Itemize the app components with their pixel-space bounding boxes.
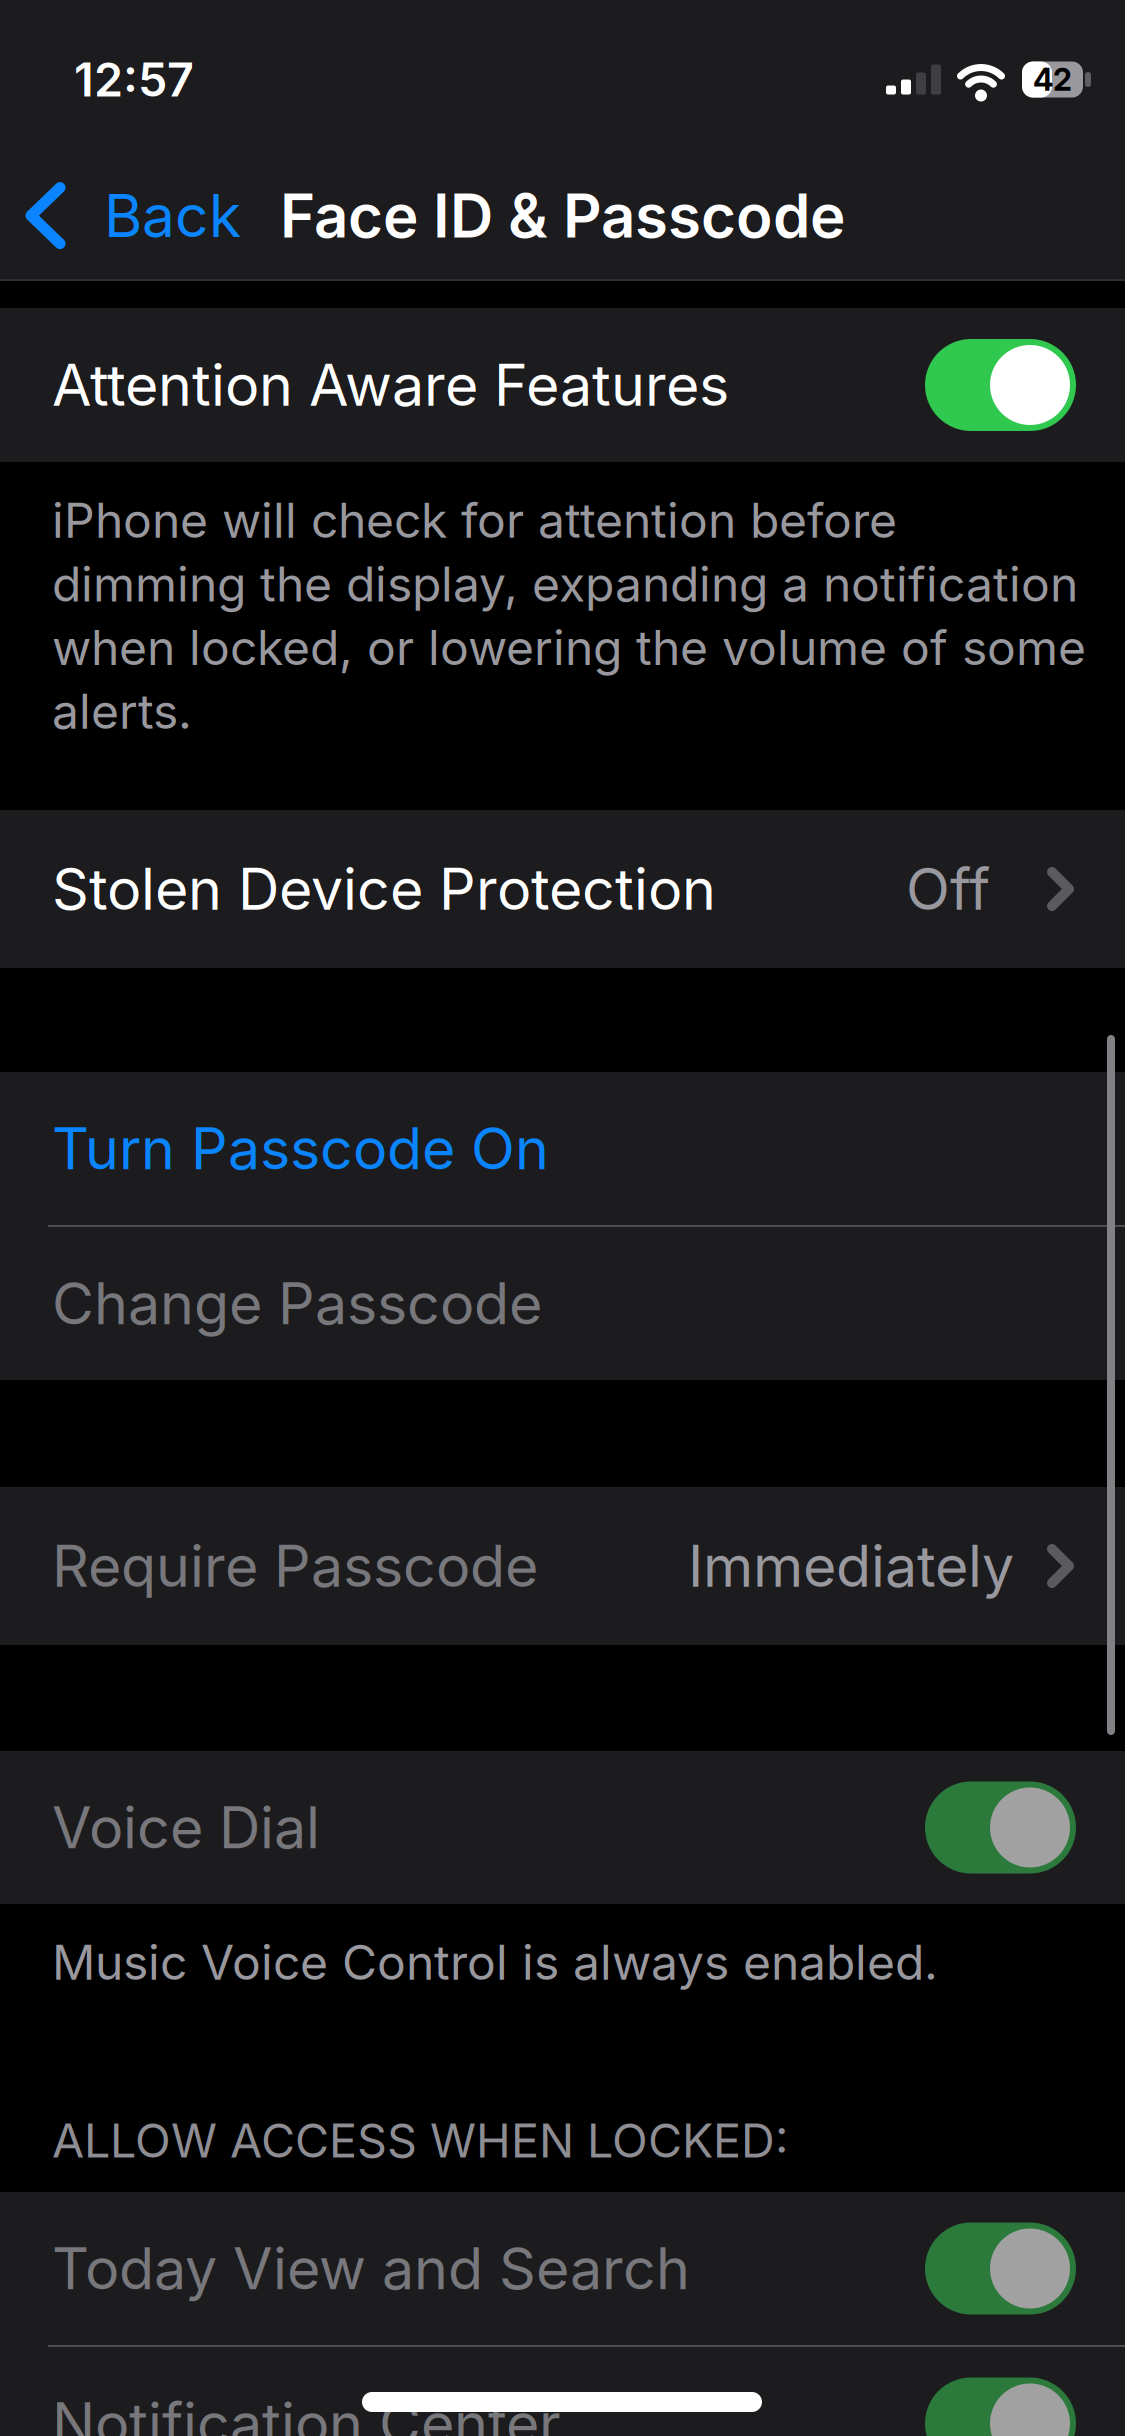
button[interactable]: Notification Center bbox=[925, 2377, 1076, 2436]
button[interactable]: Attention Aware Features bbox=[925, 339, 1076, 431]
staticText: Voice Dial bbox=[52, 1794, 320, 1861]
staticText: Off bbox=[906, 855, 990, 923]
staticText: 42 bbox=[1033, 61, 1072, 98]
button[interactable]: Stolen Device Protection bbox=[0, 810, 1125, 968]
button[interactable]: Require Passcode bbox=[0, 1487, 1125, 1645]
button[interactable]: Voice Dial bbox=[925, 1781, 1076, 1873]
staticText: 12:57 bbox=[74, 52, 194, 107]
staticText: Stolen Device Protection bbox=[52, 855, 716, 923]
staticText: iPhone will check for attention before d… bbox=[52, 492, 1086, 739]
staticText: Notification Center bbox=[52, 2390, 561, 2436]
staticText: Immediately bbox=[688, 1532, 1014, 1600]
staticText: Turn Passcode On bbox=[52, 1115, 549, 1182]
staticText: Face ID & Passcode bbox=[280, 180, 845, 251]
button[interactable]: Turn Passcode On bbox=[0, 1072, 1125, 1225]
staticText: Change Passcode bbox=[52, 1270, 542, 1337]
staticText: Music Voice Control is always enabled. bbox=[52, 1934, 938, 1991]
staticText: ALLOW ACCESS WHEN LOCKED: bbox=[52, 2113, 788, 2168]
staticText: Require Passcode bbox=[52, 1532, 538, 1600]
staticText: Today View and Search bbox=[52, 2235, 690, 2302]
button[interactable]: Today View and Search bbox=[925, 2222, 1076, 2314]
button[interactable]: Back bbox=[0, 181, 241, 250]
staticText: Back bbox=[104, 181, 241, 250]
staticText: Attention Aware Features bbox=[52, 351, 729, 419]
button[interactable]: Change Passcode bbox=[0, 1227, 1125, 1380]
